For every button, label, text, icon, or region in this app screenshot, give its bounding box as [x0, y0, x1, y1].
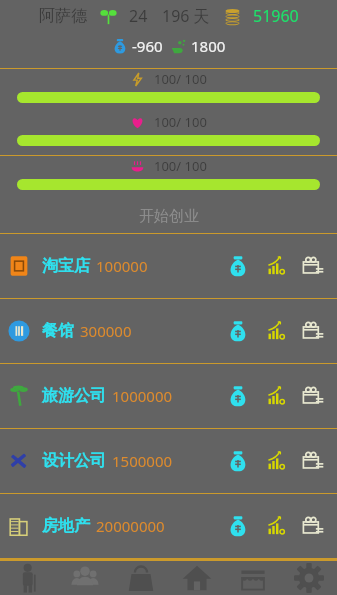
button[interactable]: Profile — [0, 561, 57, 595]
staticText: 餐馆 — [42, 321, 74, 341]
button[interactable]: Stats — [261, 251, 291, 281]
staticText: 100000 — [96, 256, 148, 276]
staticText: 100/ 100 — [154, 70, 207, 88]
staticText: 1800 — [191, 36, 226, 56]
button[interactable]: Invest — [223, 316, 253, 346]
button[interactable]: Shop — [225, 561, 281, 595]
button[interactable]: Trade — [297, 445, 329, 477]
button[interactable]: 餐馆 — [0, 299, 337, 363]
button[interactable]: Stats — [261, 511, 291, 541]
staticText: 196 天 — [162, 5, 210, 27]
button[interactable]: Invest — [223, 511, 253, 541]
button[interactable]: Bag — [113, 561, 169, 595]
button[interactable]: 房地产 — [0, 494, 337, 558]
button[interactable]: Trade — [297, 315, 329, 347]
button[interactable]: Invest — [223, 381, 253, 411]
staticText: 100/ 100 — [154, 113, 207, 131]
button[interactable]: Invest — [223, 446, 253, 476]
staticText: 淘宝店 — [42, 256, 90, 276]
staticText: -960 — [132, 36, 163, 56]
button[interactable]: Home — [169, 561, 225, 595]
button[interactable]: Stats — [261, 381, 291, 411]
button[interactable]: Settings — [281, 561, 337, 595]
button[interactable]: 旅游公司 — [0, 364, 337, 428]
staticText: 阿萨德 — [39, 6, 87, 26]
button[interactable]: Stats — [261, 446, 291, 476]
staticText: 300000 — [80, 321, 132, 341]
button[interactable]: Stats — [261, 316, 291, 346]
staticText: 设计公司 — [42, 451, 106, 471]
staticText: 24 — [129, 5, 148, 27]
staticText: 1500000 — [112, 451, 173, 471]
button[interactable]: Friends — [57, 561, 113, 595]
button[interactable]: Trade — [297, 510, 329, 542]
button[interactable]: Invest — [223, 251, 253, 281]
staticText: 旅游公司 — [42, 386, 106, 406]
button[interactable]: Trade — [297, 380, 329, 412]
staticText: 1000000 — [112, 386, 173, 406]
staticText: 100/ 100 — [154, 157, 207, 175]
button[interactable]: 设计公司 — [0, 429, 337, 493]
button[interactable]: 淘宝店 — [0, 234, 337, 298]
staticText: 开始创业 — [139, 207, 199, 226]
button[interactable]: Trade — [297, 250, 329, 282]
staticText: 20000000 — [96, 516, 165, 536]
staticText: 房地产 — [42, 516, 90, 536]
staticText: 51960 — [253, 5, 299, 27]
